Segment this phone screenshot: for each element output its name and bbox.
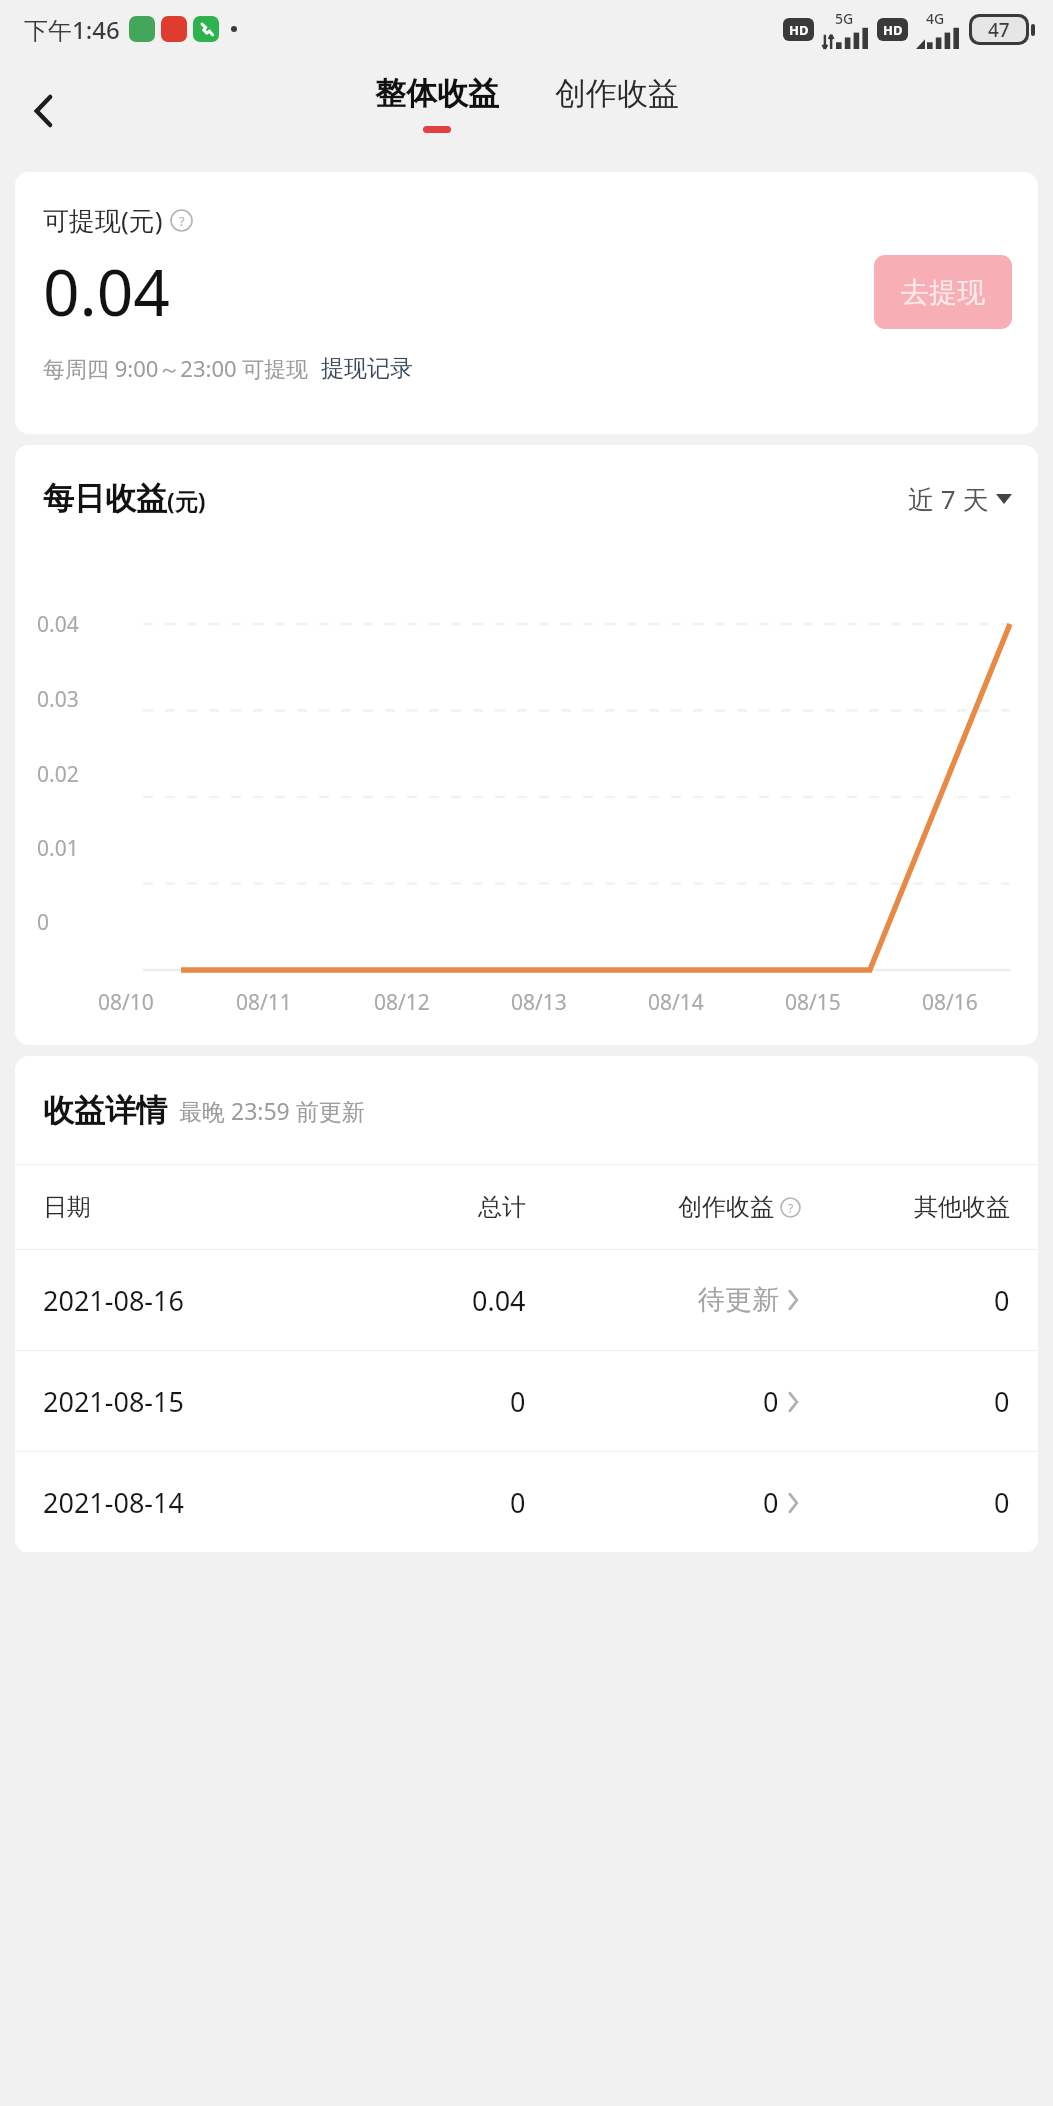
staticText: 待更新 bbox=[698, 1283, 779, 1317]
button[interactable]: 去提现 bbox=[874, 255, 1012, 329]
button[interactable]: 整体收益 bbox=[363, 58, 511, 149]
staticText: 2021-08-14 bbox=[43, 1484, 184, 1521]
staticText: 0 bbox=[37, 908, 50, 937]
staticText: 0.02 bbox=[37, 760, 79, 789]
staticText: HD bbox=[883, 21, 903, 39]
staticText: 0 bbox=[510, 1383, 526, 1420]
button[interactable]: 创作收益 bbox=[543, 58, 691, 149]
staticText: 08/13 bbox=[511, 988, 567, 1017]
staticText: ? bbox=[179, 212, 185, 230]
staticText: 日期 bbox=[43, 1192, 91, 1222]
staticText: 47 bbox=[988, 17, 1010, 42]
staticText: 总计 bbox=[478, 1192, 526, 1222]
staticText: 0 bbox=[994, 1282, 1010, 1319]
staticText: 创作收益 bbox=[555, 74, 679, 113]
staticText: 08/16 bbox=[922, 988, 978, 1017]
staticText: 08/12 bbox=[374, 988, 430, 1017]
staticText: 0.03 bbox=[37, 685, 79, 714]
button[interactable]: 2021-08-14 bbox=[15, 1452, 1038, 1552]
staticText: 0.01 bbox=[37, 834, 79, 863]
staticText: 提现记录 bbox=[321, 354, 413, 383]
staticText: 创作收益 bbox=[678, 1192, 774, 1222]
button[interactable]: 2021-08-16 bbox=[15, 1250, 1038, 1350]
staticText: 去提现 bbox=[901, 275, 985, 310]
staticText: 整体收益 bbox=[375, 74, 499, 113]
staticText: 近 7 天 bbox=[908, 481, 989, 517]
button[interactable]: 近 7 天 bbox=[908, 481, 1012, 517]
staticText: 0 bbox=[994, 1383, 1010, 1420]
staticText: 最晚 23:59 前更新 bbox=[179, 1095, 365, 1126]
staticText: 0 bbox=[994, 1484, 1010, 1521]
staticText: 0.04 bbox=[472, 1282, 526, 1319]
staticText: 下午1:46 bbox=[24, 13, 120, 46]
staticText: 08/11 bbox=[236, 988, 292, 1017]
staticText: 0 bbox=[763, 1383, 779, 1420]
staticText: 每日收益 bbox=[43, 479, 167, 518]
staticText: 0.04 bbox=[43, 248, 170, 335]
staticText: 0 bbox=[510, 1484, 526, 1521]
staticText: 0 bbox=[763, 1484, 779, 1521]
staticText: 08/10 bbox=[98, 988, 154, 1017]
button[interactable]: Back bbox=[14, 80, 76, 142]
staticText: 可提现(元) bbox=[43, 202, 163, 238]
staticText: 2021-08-16 bbox=[43, 1282, 184, 1319]
staticText: 0.04 bbox=[37, 610, 79, 639]
staticText: 其他收益 bbox=[914, 1192, 1010, 1222]
staticText: 08/15 bbox=[785, 988, 841, 1017]
staticText: 收益详情 bbox=[43, 1091, 167, 1130]
staticText: 08/14 bbox=[648, 988, 704, 1017]
staticText: HD bbox=[789, 21, 809, 39]
staticText: 5G bbox=[835, 9, 854, 28]
staticText: 4G bbox=[926, 9, 945, 28]
staticText: 2021-08-15 bbox=[43, 1383, 184, 1420]
staticText: (元) bbox=[167, 485, 206, 516]
staticText: ? bbox=[788, 1200, 794, 1216]
staticText: 每周四 9:00～23:00 可提现 bbox=[43, 353, 309, 383]
button[interactable]: 提现记录 bbox=[321, 354, 413, 383]
button[interactable]: 2021-08-15 bbox=[15, 1351, 1038, 1451]
